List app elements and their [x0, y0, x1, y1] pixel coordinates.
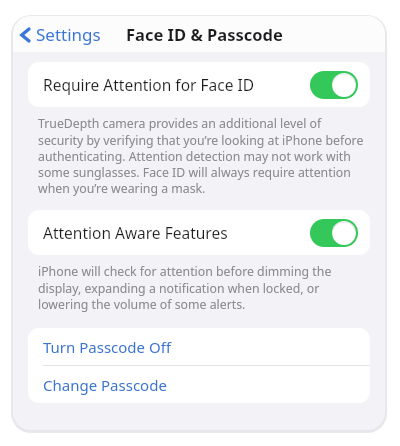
staticText: TrueDepth camera provides an additional …	[38, 115, 364, 196]
staticText: Settings	[36, 23, 101, 46]
staticText: Turn Passcode Off	[43, 337, 171, 357]
button[interactable]: Turn Passcode Off	[28, 328, 370, 365]
button[interactable]: Change Passcode	[28, 366, 370, 403]
staticText: Face ID & Passcode	[126, 23, 283, 45]
button[interactable]: Back	[13, 19, 107, 50]
other: Back	[20, 26, 31, 44]
button[interactable]: Require Attention for Face ID	[28, 62, 370, 107]
staticText: Require Attention for Face ID	[43, 74, 310, 95]
staticText: Attention Aware Features	[43, 222, 310, 243]
button[interactable]: Attention Aware Features	[28, 210, 370, 255]
staticText: Change Passcode	[43, 375, 167, 395]
button[interactable]: Toggle on	[310, 219, 358, 247]
staticText: iPhone will check for attention before d…	[38, 263, 364, 312]
button[interactable]: Toggle on	[310, 71, 358, 99]
